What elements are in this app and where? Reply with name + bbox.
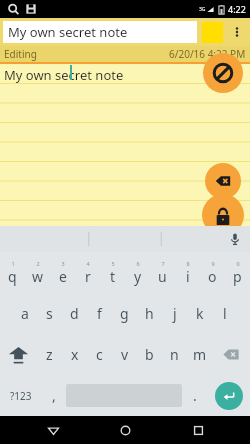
button[interactable]: Cancel [203,53,243,93]
staticText: . [193,386,197,405]
button[interactable]: z [37,334,62,375]
button[interactable]: Backspace [212,334,250,375]
staticText: 4:22 [228,3,246,15]
button[interactable]: s [37,293,62,334]
button[interactable]: g [112,293,137,334]
button[interactable]: x [62,334,87,375]
staticText: 6 [136,260,140,267]
staticText: n [170,345,179,364]
staticText: 1 [11,260,15,267]
staticText: k [196,304,204,323]
staticText: 4 [86,260,90,267]
button[interactable]: My own secret note [0,64,250,226]
staticText: 3 [61,260,65,267]
staticText: v [121,345,129,364]
staticText: ?123 [10,389,32,403]
staticText: p [233,267,242,286]
staticText: 9 [211,260,215,267]
button[interactable]: 8 [175,252,200,293]
button[interactable]: h [137,293,162,334]
button[interactable]: Back [33,416,73,444]
button[interactable]: a [12,293,37,334]
button[interactable]: j [162,293,187,334]
button[interactable]: v [112,334,137,375]
staticText: y [134,267,142,286]
staticText: x [71,345,79,364]
button[interactable]: 4 [75,252,100,293]
staticText: f [97,304,102,323]
staticText: 5 [111,260,115,267]
staticText: c [96,345,103,364]
staticText: 3G [199,6,206,13]
staticText: g [120,304,129,323]
staticText: o [208,267,217,286]
button[interactable]: Delete [205,163,241,199]
button[interactable]: k [187,293,212,334]
button[interactable]: 7 [150,252,175,293]
button[interactable]: My own secret note [3,21,197,43]
staticText: u [158,267,167,286]
staticText: My own secret note [4,66,124,84]
staticText: q [8,267,17,286]
staticText: z [46,345,53,364]
button[interactable]: f [87,293,112,334]
button[interactable]: Enter [215,382,243,410]
button[interactable]: 1 [0,252,25,293]
button[interactable]: Shift [0,334,37,375]
button[interactable]: b [137,334,162,375]
staticText: 6/20/16 4:22 PM [169,47,246,61]
staticText: w [32,267,44,286]
staticText: 2 [36,260,40,267]
button[interactable]: n [162,334,187,375]
button[interactable]: 0 [225,252,250,293]
button[interactable]: Voice input [220,226,250,252]
button[interactable]: 6 [125,252,150,293]
button[interactable]: 3 [50,252,75,293]
button[interactable]: 5 [100,252,125,293]
staticText: l [223,304,227,323]
staticText: h [145,304,154,323]
staticText: s [46,304,53,323]
staticText: m [193,345,207,364]
staticText: r [85,267,91,286]
button[interactable]: 9 [200,252,225,293]
staticText: a [21,304,29,323]
staticText: 8 [186,260,190,267]
staticText: b [145,345,154,364]
button[interactable]: 2 [25,252,50,293]
button[interactable]: Home [105,416,145,444]
button[interactable]: m [187,334,212,375]
button[interactable]: . [182,375,207,416]
button[interactable]: Recents [178,416,218,444]
button[interactable]: ?123 [0,375,41,416]
staticText: Editing [4,47,37,61]
staticText: My own secret note [8,23,128,41]
staticText: e [59,267,67,286]
staticText: d [70,304,79,323]
button[interactable]: Lock note [202,194,244,236]
staticText: i [186,267,190,286]
button[interactable]: c [87,334,112,375]
button[interactable]: , [41,375,66,416]
button[interactable]: d [62,293,87,334]
staticText: j [173,304,177,323]
staticText: t [110,267,116,286]
button[interactable]: l [212,293,237,334]
staticText: 7 [161,260,165,267]
button[interactable]: More options [223,18,250,46]
staticText: , [52,386,56,405]
staticText: 0 [236,260,240,267]
